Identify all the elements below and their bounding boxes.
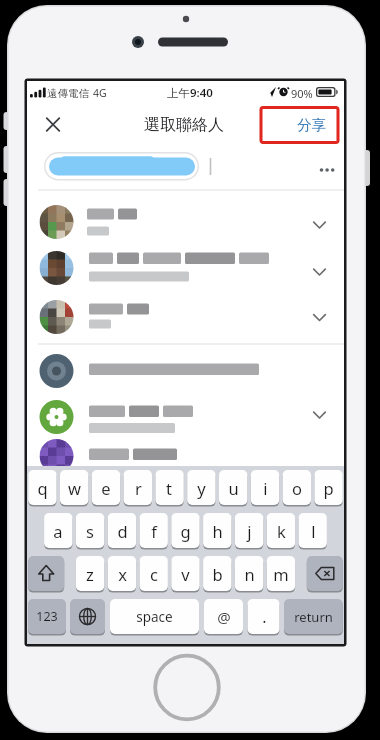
button[interactable] — [108, 556, 136, 591]
button[interactable] — [70, 599, 105, 634]
staticText: u — [228, 477, 239, 499]
staticText: g — [180, 520, 191, 542]
staticText: v — [181, 563, 190, 585]
button[interactable] — [76, 513, 104, 548]
button[interactable] — [187, 470, 215, 505]
staticText: r — [135, 477, 142, 499]
button[interactable] — [171, 513, 199, 548]
button[interactable] — [171, 556, 199, 591]
staticText: e — [101, 477, 111, 499]
button[interactable] — [203, 556, 231, 591]
staticText: return — [294, 608, 333, 626]
staticText: s — [86, 520, 94, 542]
button[interactable] — [154, 656, 219, 721]
button[interactable] — [140, 556, 168, 591]
staticText: p — [323, 477, 334, 499]
button[interactable] — [261, 107, 339, 143]
button[interactable] — [235, 513, 263, 548]
staticText: f — [151, 520, 157, 542]
button[interactable] — [76, 556, 104, 591]
staticText: . — [262, 606, 267, 628]
button[interactable] — [314, 470, 342, 505]
staticText: t — [166, 477, 172, 499]
button[interactable] — [108, 513, 136, 548]
button[interactable] — [267, 513, 295, 548]
button[interactable] — [27, 348, 344, 394]
button[interactable] — [38, 148, 308, 186]
staticText: z — [86, 563, 94, 585]
button[interactable] — [28, 599, 66, 634]
staticText: 123 — [36, 608, 58, 625]
staticText: @ — [217, 607, 231, 627]
staticText: y — [197, 477, 206, 499]
button[interactable] — [35, 106, 71, 142]
button[interactable] — [284, 599, 343, 634]
button[interactable] — [251, 470, 279, 505]
button[interactable] — [28, 556, 64, 591]
button[interactable] — [27, 294, 344, 340]
staticText: l — [311, 520, 316, 542]
button[interactable] — [92, 470, 120, 505]
staticText: i — [263, 477, 268, 499]
staticText: d — [117, 520, 128, 542]
button[interactable] — [267, 556, 295, 591]
button[interactable] — [27, 198, 344, 244]
button[interactable] — [124, 470, 152, 505]
staticText: w — [68, 477, 81, 499]
staticText: 分享 — [297, 116, 326, 134]
staticText: 4G — [93, 86, 107, 100]
button[interactable] — [283, 470, 311, 505]
staticText: 90% — [291, 86, 313, 101]
staticText: 上午9:40 — [167, 85, 213, 101]
button[interactable] — [60, 470, 88, 505]
button[interactable] — [203, 513, 231, 548]
button[interactable] — [110, 599, 199, 634]
staticText: n — [244, 563, 255, 585]
button[interactable] — [235, 556, 263, 591]
staticText: k — [277, 520, 286, 542]
button[interactable] — [27, 440, 344, 486]
button[interactable] — [312, 156, 342, 184]
staticText: 選取聯絡人 — [144, 115, 224, 135]
button[interactable] — [204, 599, 243, 634]
button[interactable] — [248, 599, 280, 634]
staticText: m — [273, 563, 289, 585]
staticText: c — [150, 563, 158, 585]
button[interactable] — [307, 556, 343, 591]
staticText: space — [136, 608, 173, 626]
staticText: 遠傳電信 — [47, 87, 89, 100]
staticText: h — [212, 520, 223, 542]
button[interactable] — [155, 470, 183, 505]
staticText: j — [247, 520, 252, 542]
button[interactable] — [140, 513, 168, 548]
staticText: b — [212, 563, 223, 585]
button[interactable] — [44, 513, 72, 548]
staticText: q — [37, 477, 48, 499]
staticText: o — [292, 477, 302, 499]
staticText: x — [118, 563, 127, 585]
button[interactable] — [27, 394, 344, 440]
button[interactable] — [27, 246, 344, 292]
button[interactable] — [299, 513, 327, 548]
button[interactable] — [28, 470, 56, 505]
button[interactable] — [219, 470, 247, 505]
staticText: a — [53, 520, 63, 542]
